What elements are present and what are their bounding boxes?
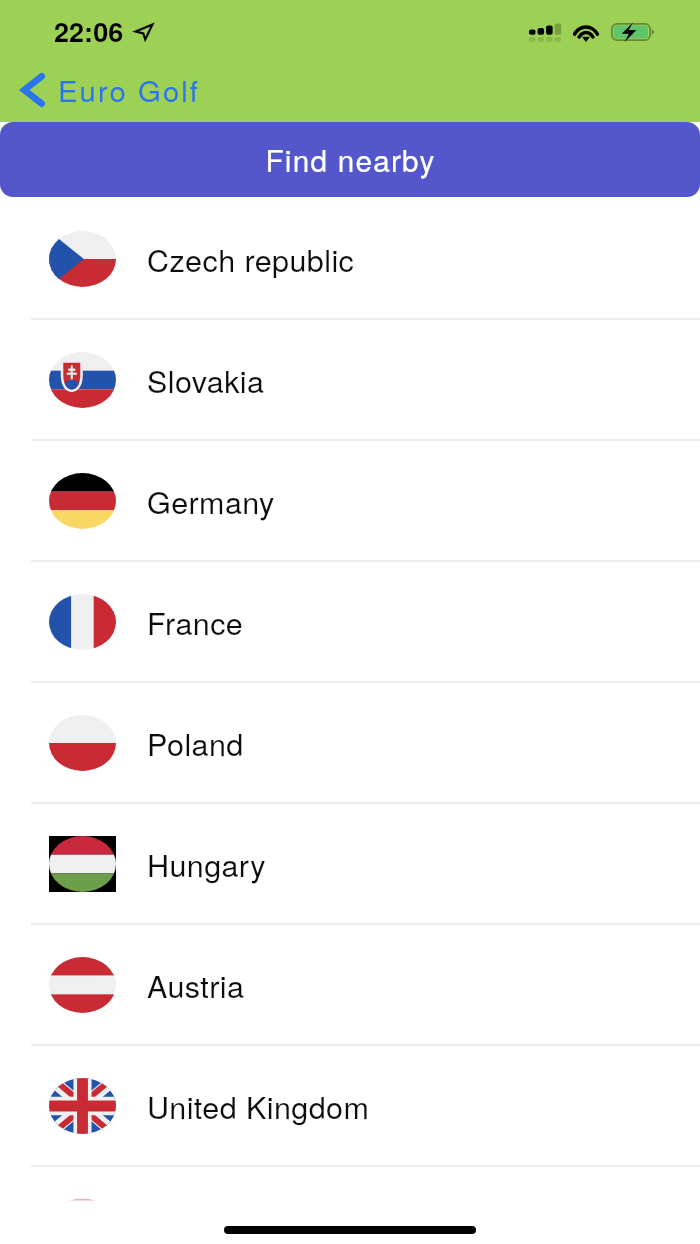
button[interactable]: Austria xyxy=(0,925,700,1046)
staticText: Slovakia xyxy=(147,358,265,402)
button[interactable]: Hungary xyxy=(0,804,700,925)
button[interactable]: Find nearby xyxy=(0,122,700,197)
staticText: Poland xyxy=(147,721,244,765)
button[interactable]: Czech republic xyxy=(0,199,700,320)
staticText: Austria xyxy=(147,963,245,1007)
staticText: Czech republic xyxy=(147,237,355,281)
button[interactable]: Germany xyxy=(0,441,700,562)
staticText: Euro Golf xyxy=(58,68,201,110)
button[interactable]: Slovakia xyxy=(0,320,700,441)
staticText: Find nearby xyxy=(265,138,436,181)
staticText: 22:06 xyxy=(54,12,124,51)
staticText: Germany xyxy=(147,479,275,523)
staticText: United Kingdom xyxy=(147,1084,370,1128)
button[interactable]: Poland xyxy=(0,683,700,804)
staticText: Hungary xyxy=(147,842,266,886)
button[interactable]: United Kingdom xyxy=(0,1046,700,1167)
button[interactable]: France xyxy=(0,562,700,683)
staticText: France xyxy=(147,600,244,644)
button[interactable]: Back to Euro Golf xyxy=(0,60,700,118)
